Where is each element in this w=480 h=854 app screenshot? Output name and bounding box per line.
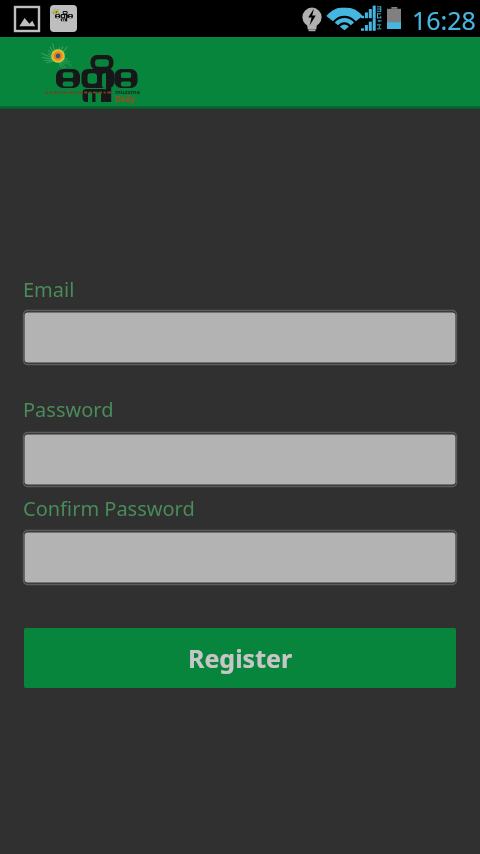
button[interactable]: Register bbox=[24, 628, 456, 688]
button[interactable]: Muzzma Daily bbox=[0, 37, 480, 109]
button[interactable]: Email bbox=[23, 310, 457, 365]
other: Muzzma Daily notification bbox=[50, 5, 77, 32]
staticText: Email bbox=[23, 276, 75, 303]
staticText: 16:28 bbox=[412, 3, 476, 37]
other: Screenshot notification bbox=[15, 7, 39, 31]
button[interactable]: Password bbox=[23, 432, 457, 487]
other: Wi-Fi bbox=[330, 6, 359, 32]
button[interactable]: Confirm Password bbox=[23, 530, 457, 585]
staticText: Confirm Password bbox=[23, 495, 195, 522]
staticText: Daily bbox=[115, 93, 135, 104]
staticText: muzzma bbox=[115, 88, 141, 96]
staticText: Register bbox=[188, 641, 293, 675]
other: Mobile signal bbox=[361, 5, 378, 32]
staticText: Password bbox=[23, 396, 114, 423]
